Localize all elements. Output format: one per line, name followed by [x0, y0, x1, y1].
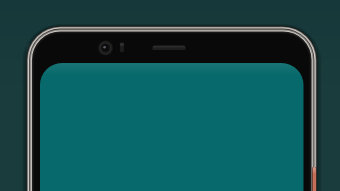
button[interactable]: Smartphone product render: [0, 0, 340, 191]
